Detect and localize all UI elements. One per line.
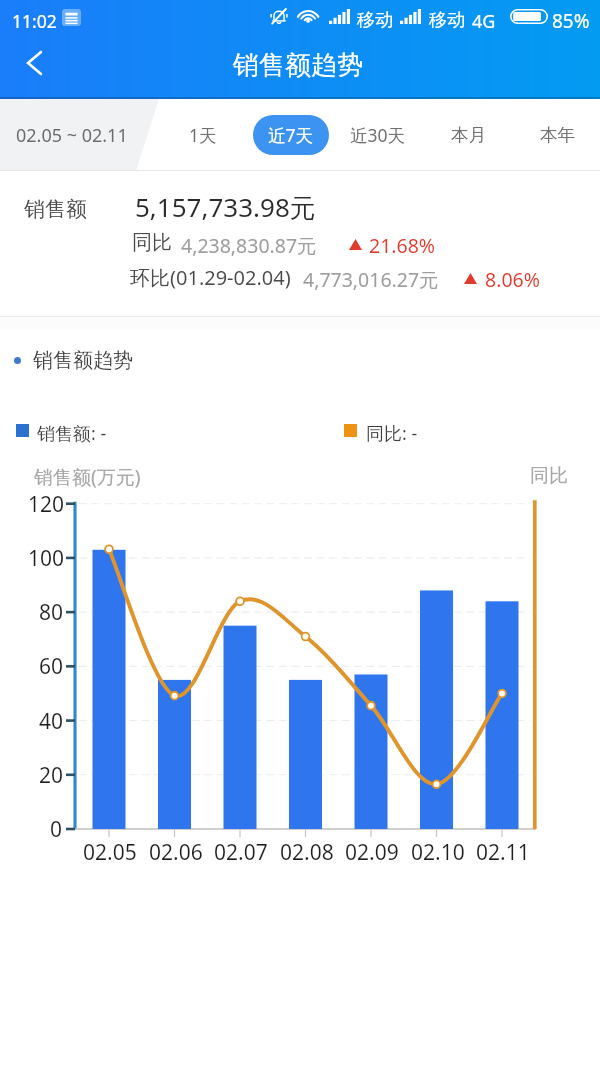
button[interactable]: Back [9, 41, 61, 93]
staticText: 8.06% [485, 266, 540, 293]
staticText: 销售额趋势 [33, 348, 133, 373]
staticText: 销售额: - [37, 421, 107, 446]
staticText: 移动 [429, 9, 465, 32]
staticText: 02.10 [411, 838, 465, 867]
staticText: 120 [28, 490, 65, 519]
staticText: 移动 [357, 9, 393, 32]
staticText: 02.08 [280, 838, 334, 867]
staticText: 同比 [132, 230, 172, 255]
staticText: 4G [472, 9, 496, 34]
staticText: 85% [552, 8, 590, 34]
staticText: 20 [39, 761, 64, 790]
staticText: 100 [28, 544, 65, 573]
button[interactable]: 近30天 [333, 115, 423, 155]
staticText: 销售额(万元) [34, 464, 141, 490]
button[interactable]: 近7天 [253, 115, 329, 155]
staticText: 02.05 ~ 02.11 [16, 123, 128, 148]
staticText: 销售额趋势 [233, 49, 363, 82]
staticText: 02.05 [83, 838, 137, 867]
button[interactable]: 本月 [440, 115, 496, 155]
staticText: 02.07 [214, 838, 268, 867]
staticText: 环比(01.29-02.04) [130, 264, 291, 291]
staticText: 02.06 [149, 838, 203, 867]
staticText: 4,238,830.87元 [181, 232, 317, 259]
staticText: 80 [39, 598, 64, 627]
staticText: 02.11 [476, 838, 530, 867]
staticText: 本年 [540, 124, 575, 146]
staticText: 60 [39, 652, 64, 681]
button[interactable]: 1天 [175, 115, 231, 155]
staticText: 4,773,016.27元 [303, 266, 439, 293]
staticText: 5,157,733.98元 [135, 189, 316, 225]
staticText: 近7天 [268, 123, 314, 147]
staticText: 本月 [451, 124, 486, 146]
staticText: 1天 [189, 123, 217, 147]
staticText: 0 [50, 815, 63, 844]
staticText: 同比 [530, 464, 568, 488]
staticText: 02.09 [345, 838, 399, 867]
staticText: 21.68% [369, 232, 436, 259]
button[interactable]: 本年 [529, 115, 585, 155]
staticText: 同比: - [366, 421, 418, 446]
staticText: 11:02 [12, 9, 57, 33]
staticText: 40 [39, 707, 64, 736]
staticText: 近30天 [350, 123, 406, 147]
staticText: 销售额 [24, 196, 87, 222]
